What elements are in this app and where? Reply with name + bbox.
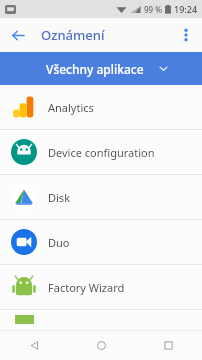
staticText: Oznámení <box>41 26 105 44</box>
staticText: Disk <box>48 190 71 205</box>
button[interactable]: Factory Wizard <box>0 265 202 309</box>
staticText: Analytics <box>48 100 94 115</box>
button[interactable]: Disk <box>0 175 202 219</box>
button[interactable]: Duo <box>0 220 202 264</box>
button[interactable]: Recents <box>135 330 202 360</box>
staticText: Duo <box>48 235 70 250</box>
staticText: 19:24 <box>174 3 198 15</box>
button[interactable]: Device configuration <box>0 130 202 174</box>
button[interactable] <box>0 310 202 324</box>
staticText: 99 % <box>144 4 163 15</box>
staticText: Device configuration <box>48 145 155 160</box>
button[interactable]: More options <box>173 22 199 48</box>
staticText: Factory Wizard <box>48 280 125 295</box>
button[interactable]: Back <box>0 330 68 360</box>
button[interactable]: Všechny aplikace <box>0 52 202 85</box>
staticText: Všechny aplikace <box>46 61 144 77</box>
button[interactable]: Home <box>68 330 135 360</box>
button[interactable]: Back <box>4 21 32 49</box>
button[interactable]: Analytics <box>0 85 202 129</box>
